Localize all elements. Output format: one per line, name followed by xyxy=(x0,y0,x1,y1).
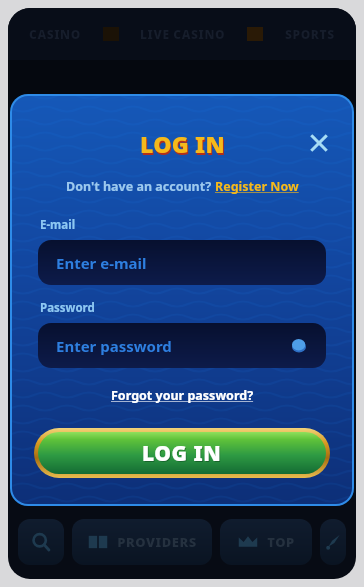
button[interactable]: Register Now xyxy=(215,178,299,195)
staticText: LOG IN xyxy=(143,440,223,469)
staticText: Don't have an account? xyxy=(66,178,215,195)
button[interactable]: PROVIDERS xyxy=(72,519,212,565)
staticText: SPORTS xyxy=(285,26,335,42)
staticText: LOG IN xyxy=(140,128,225,159)
button[interactable]: Close xyxy=(302,126,336,160)
button[interactable]: LIVE CASINO xyxy=(138,26,228,42)
button[interactable]: Show password xyxy=(286,333,312,359)
staticText: Forgot your password? xyxy=(111,387,254,404)
staticText: Enter password xyxy=(56,336,172,356)
button[interactable]: CASINO xyxy=(27,26,83,42)
staticText: LIVE CASINO xyxy=(140,26,226,42)
button[interactable]: Forgot your password? xyxy=(111,387,254,404)
button[interactable]: TOP xyxy=(220,519,312,565)
staticText: Enter e-mail xyxy=(56,253,147,273)
button[interactable]: Enter e-mail xyxy=(38,240,326,285)
staticText: CASINO xyxy=(29,26,81,42)
button[interactable]: Search xyxy=(18,519,64,565)
button[interactable]: LOG IN xyxy=(38,432,326,474)
button[interactable]: Enter password xyxy=(38,323,326,368)
staticText: E-mail xyxy=(40,217,76,233)
staticText: LOG IN xyxy=(141,130,226,161)
staticText: PROVIDERS xyxy=(117,533,197,551)
staticText: TOP xyxy=(267,533,295,551)
staticText: LOG IN xyxy=(142,439,222,468)
button[interactable]: Rocket xyxy=(320,519,346,565)
staticText: Register Now xyxy=(215,178,299,195)
staticText: Password xyxy=(40,300,95,316)
button[interactable]: SPORTS xyxy=(283,26,337,42)
